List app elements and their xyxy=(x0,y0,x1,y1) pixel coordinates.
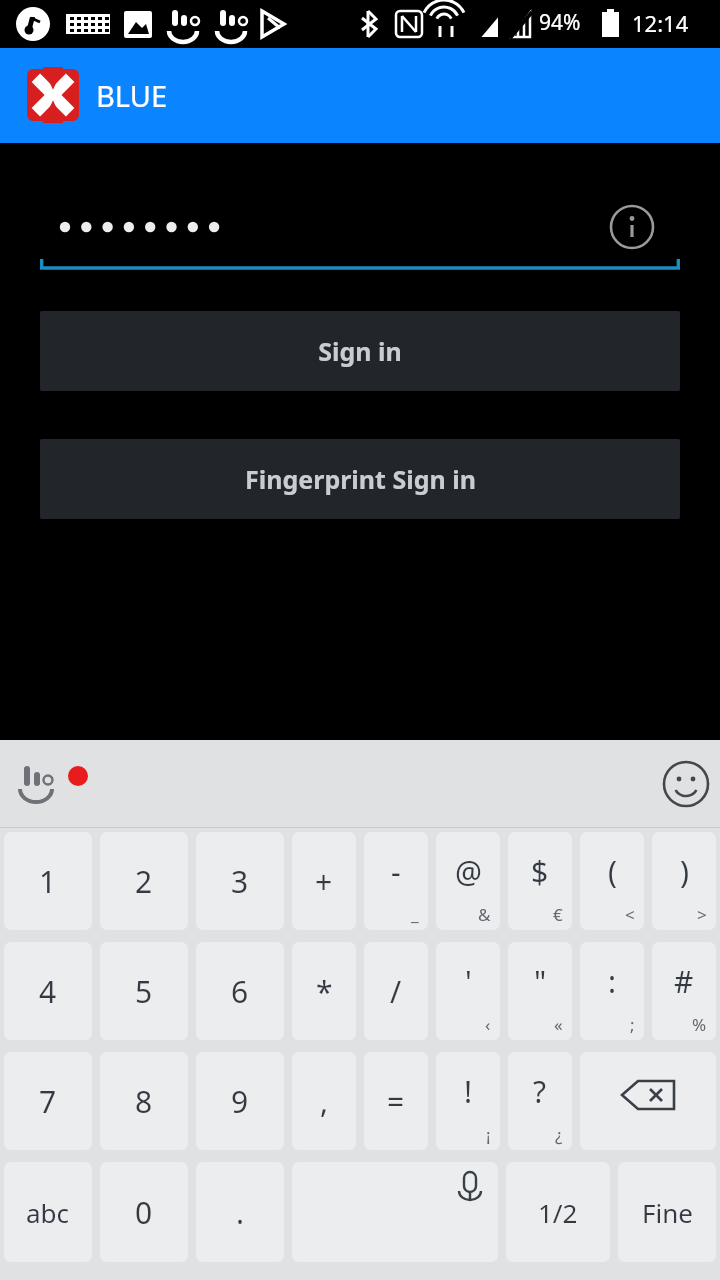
button[interactable]: Sign in xyxy=(40,311,680,391)
staticText: _ xyxy=(411,903,419,926)
button[interactable]: / xyxy=(364,942,428,1040)
staticText: , xyxy=(320,1081,329,1122)
button[interactable]: + xyxy=(292,832,356,930)
button[interactable]: ' xyxy=(436,942,500,1040)
staticText: ‹ xyxy=(485,1013,491,1036)
button[interactable]: 8 xyxy=(100,1052,188,1150)
button[interactable] xyxy=(40,195,680,275)
staticText: : xyxy=(608,961,617,1002)
button[interactable]: ( xyxy=(580,832,644,930)
staticText: 1 xyxy=(39,861,57,902)
staticText: ; xyxy=(630,1013,635,1036)
staticText: 12:14 xyxy=(632,8,689,38)
button[interactable]: @ xyxy=(436,832,500,930)
staticText: Fine xyxy=(642,1195,693,1230)
staticText: 7 xyxy=(39,1081,57,1122)
staticText: * xyxy=(316,971,333,1012)
staticText: & xyxy=(478,903,491,926)
button[interactable]: * xyxy=(292,942,356,1040)
staticText: abc xyxy=(26,1195,70,1230)
button[interactable]: $ xyxy=(508,832,572,930)
staticText: 8 xyxy=(135,1081,153,1122)
button[interactable]: 1 xyxy=(4,832,92,930)
button[interactable]: ) xyxy=(652,832,716,930)
button[interactable]: Space xyxy=(292,1162,498,1262)
staticText: 0 xyxy=(135,1192,153,1233)
staticText: € xyxy=(553,903,563,926)
staticText: ( xyxy=(608,851,617,892)
staticText: Fingerprint Sign in xyxy=(245,462,476,496)
button[interactable]: = xyxy=(364,1052,428,1150)
staticText: 6 xyxy=(231,971,249,1012)
button[interactable]: 6 xyxy=(196,942,284,1040)
staticText: ¿ xyxy=(555,1123,563,1146)
staticText: # xyxy=(674,961,694,1002)
staticText: $ xyxy=(531,851,549,892)
staticText: 4 xyxy=(39,971,57,1012)
staticText: @ xyxy=(455,851,482,892)
staticText: / xyxy=(390,971,402,1012)
button[interactable]: ? xyxy=(508,1052,572,1150)
staticText: Sign in xyxy=(318,334,402,368)
button[interactable]: Fine xyxy=(618,1162,716,1262)
staticText: 3 xyxy=(231,861,249,902)
button[interactable]: Fingerprint Sign in xyxy=(40,439,680,519)
staticText: 2 xyxy=(135,861,153,902)
staticText: 94% xyxy=(539,8,581,37)
staticText: ' xyxy=(465,961,472,1002)
staticText: 1/2 xyxy=(538,1195,578,1230)
button[interactable]: abc xyxy=(4,1162,92,1262)
staticText: ? xyxy=(533,1071,547,1112)
staticText: ) xyxy=(680,851,689,892)
button[interactable]: : xyxy=(580,942,644,1040)
staticText: < xyxy=(625,903,635,926)
staticText: « xyxy=(554,1013,563,1036)
staticText: 9 xyxy=(231,1081,249,1122)
staticText: ¡ xyxy=(486,1123,491,1146)
button[interactable]: 4 xyxy=(4,942,92,1040)
button[interactable]: Keyboard settings xyxy=(10,758,66,814)
button[interactable]: 1/2 xyxy=(506,1162,610,1262)
button[interactable]: " xyxy=(508,942,572,1040)
staticText: = xyxy=(387,1081,405,1122)
staticText: BLUE xyxy=(96,76,168,115)
staticText: > xyxy=(697,903,707,926)
staticText: ! xyxy=(464,1071,473,1112)
staticText: - xyxy=(391,851,401,892)
staticText: . xyxy=(236,1192,245,1233)
button[interactable]: , xyxy=(292,1052,356,1150)
button[interactable]: ! xyxy=(436,1052,500,1150)
button[interactable]: 5 xyxy=(100,942,188,1040)
button[interactable]: 7 xyxy=(4,1052,92,1150)
button[interactable]: 9 xyxy=(196,1052,284,1150)
staticText: 5 xyxy=(135,971,153,1012)
button[interactable]: 0 xyxy=(100,1162,188,1262)
staticText: % xyxy=(692,1013,707,1036)
button[interactable]: 2 xyxy=(100,832,188,930)
button[interactable]: 3 xyxy=(196,832,284,930)
button[interactable]: Emoji xyxy=(662,760,710,808)
staticText: " xyxy=(534,961,547,1002)
button[interactable]: Backspace xyxy=(580,1052,716,1150)
button[interactable]: . xyxy=(196,1162,284,1262)
button[interactable]: - xyxy=(364,832,428,930)
staticText: + xyxy=(315,861,333,902)
button[interactable]: # xyxy=(652,942,716,1040)
